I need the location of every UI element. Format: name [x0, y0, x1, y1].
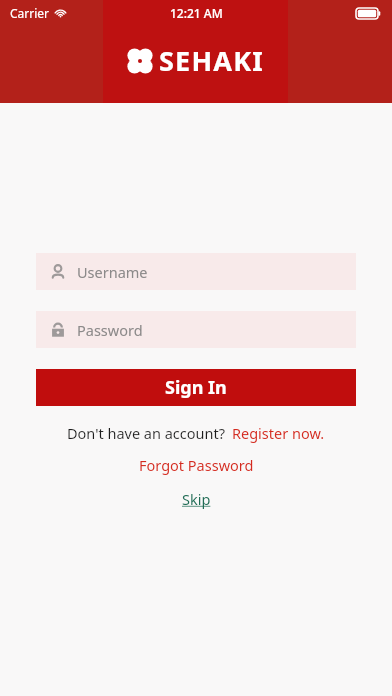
staticText: Don't have an account?: [67, 423, 225, 443]
button[interactable]: Username: [36, 253, 356, 290]
button[interactable]: Password: [36, 311, 356, 348]
button[interactable]: Forgot Password: [139, 455, 254, 475]
staticText: 12:21 AM: [170, 5, 223, 21]
staticText: Password: [77, 320, 143, 340]
button[interactable]: Skip: [182, 489, 211, 509]
button[interactable]: Register now.: [232, 423, 325, 443]
staticText: Carrier: [10, 5, 50, 21]
staticText: Forgot Password: [139, 455, 254, 475]
staticText: Skip: [182, 489, 211, 509]
button[interactable]: Sign In: [36, 369, 356, 406]
staticText: Username: [77, 262, 148, 282]
staticText: Register now.: [232, 423, 325, 443]
staticText: Sign In: [165, 375, 227, 400]
staticText: SEHAKI: [159, 42, 264, 79]
